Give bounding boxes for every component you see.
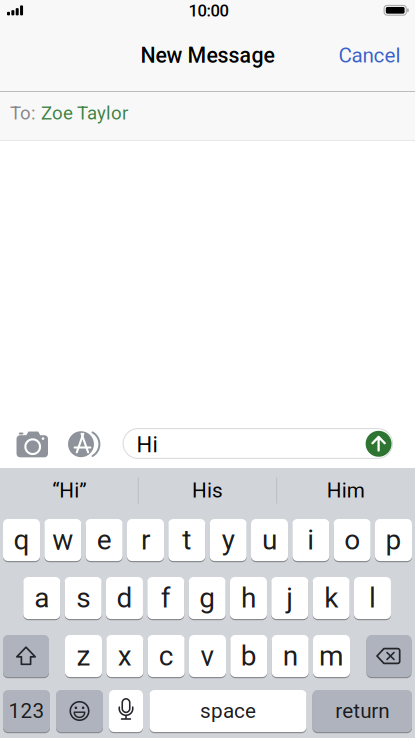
staticText: f <box>161 582 171 614</box>
button[interactable]: To: <box>10 89 405 137</box>
button[interactable]: p <box>375 518 412 562</box>
staticText: b <box>241 640 257 672</box>
staticText: 123 <box>8 699 44 723</box>
staticText: To: <box>10 102 36 124</box>
staticText: c <box>159 640 174 672</box>
button[interactable]: v <box>189 634 226 678</box>
staticText: k <box>324 582 338 614</box>
button[interactable]: c <box>148 634 185 678</box>
button[interactable] <box>56 689 103 733</box>
staticText: q <box>13 524 29 556</box>
button[interactable]: f <box>147 576 184 620</box>
button[interactable]: t <box>168 518 205 562</box>
button[interactable]: d <box>106 576 143 620</box>
button[interactable]: return <box>312 689 412 733</box>
staticText: space <box>200 699 256 723</box>
staticText: g <box>199 582 215 614</box>
staticText: p <box>385 524 401 556</box>
button[interactable]: Cancel <box>338 43 400 68</box>
button[interactable]: o <box>334 518 371 562</box>
button[interactable]: m <box>313 634 350 678</box>
staticText: v <box>200 640 214 672</box>
button[interactable]: l <box>354 576 391 620</box>
button[interactable]: n <box>272 634 309 678</box>
button[interactable]: w <box>44 518 81 562</box>
button[interactable]: g <box>189 576 226 620</box>
staticText: Him <box>327 478 365 503</box>
staticText: New Message <box>140 43 274 68</box>
button[interactable]: Hi <box>123 428 393 459</box>
staticText: i <box>307 524 314 556</box>
button[interactable]: i <box>292 518 329 562</box>
button[interactable]: r <box>127 518 164 562</box>
button[interactable]: a <box>23 576 60 620</box>
staticText: return <box>335 699 389 723</box>
button[interactable]: s <box>65 576 102 620</box>
button[interactable]: x <box>106 634 143 678</box>
staticText: Hi <box>137 432 158 458</box>
staticText: m <box>319 640 344 672</box>
staticText: t <box>182 524 191 556</box>
button[interactable] <box>365 430 392 457</box>
button[interactable]: space <box>149 689 306 733</box>
button[interactable]: His <box>142 468 272 513</box>
staticText: 10:00 <box>188 1 228 20</box>
staticText: a <box>34 582 49 614</box>
staticText: o <box>344 524 360 556</box>
staticText: n <box>283 640 298 672</box>
button[interactable] <box>13 428 53 460</box>
button[interactable]: “Hi” <box>4 468 134 513</box>
button[interactable]: u <box>251 518 288 562</box>
staticText: z <box>76 640 90 672</box>
staticText: “Hi” <box>52 478 86 503</box>
staticText: u <box>262 524 277 556</box>
button[interactable] <box>3 634 49 678</box>
button[interactable]: b <box>230 634 267 678</box>
button[interactable]: y <box>210 518 247 562</box>
button[interactable]: h <box>230 576 267 620</box>
staticText: w <box>52 524 73 556</box>
staticText: r <box>141 524 150 556</box>
staticText: His <box>192 478 223 503</box>
button[interactable] <box>61 427 105 462</box>
staticText: e <box>97 524 112 556</box>
staticText: x <box>118 640 132 672</box>
button[interactable]: k <box>313 576 350 620</box>
staticText: l <box>369 582 376 614</box>
button[interactable] <box>366 634 411 678</box>
button[interactable]: z <box>65 634 102 678</box>
staticText: s <box>76 582 90 614</box>
button[interactable]: 123 <box>3 689 50 733</box>
staticText: h <box>241 582 256 614</box>
staticText: j <box>286 582 293 614</box>
staticText: y <box>222 524 235 556</box>
staticText: Zoe Taylor <box>41 102 128 124</box>
button[interactable]: q <box>3 518 40 562</box>
button[interactable]: j <box>271 576 308 620</box>
button[interactable]: Him <box>281 468 411 513</box>
button[interactable] <box>109 689 143 733</box>
staticText: Cancel <box>338 43 400 68</box>
button[interactable]: e <box>86 518 123 562</box>
staticText: d <box>116 582 132 614</box>
